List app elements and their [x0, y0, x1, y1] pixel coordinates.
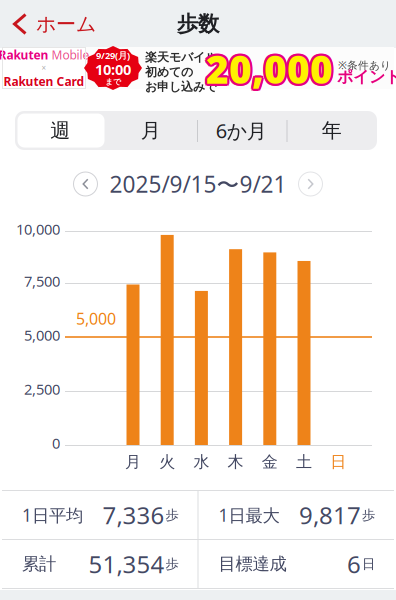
staticText: 金 [262, 452, 278, 472]
button[interactable]: Rakuten [0, 47, 394, 89]
staticText: Mobile [51, 47, 89, 63]
staticText: 水 [193, 452, 209, 472]
staticText: 6 [347, 548, 361, 580]
staticText: 20,000 [204, 43, 331, 94]
staticText: 10,000 [16, 219, 60, 239]
staticText: お申し込みで [145, 79, 217, 94]
staticText: ※条件あり [338, 58, 391, 72]
staticText: × [41, 63, 46, 73]
staticText: 歩 [165, 556, 178, 572]
staticText: Rakuten [0, 47, 48, 63]
staticText: ポイント [337, 67, 396, 87]
staticText: 1日最大 [218, 503, 279, 526]
staticText: Card [56, 73, 84, 89]
button[interactable]: 6か月 [196, 111, 286, 150]
button[interactable]: ホーム [0, 0, 96, 48]
staticText: 歩数 [177, 11, 219, 37]
staticText: 2,500 [24, 379, 60, 399]
staticText: 目標達成 [218, 553, 286, 575]
staticText: 火 [159, 452, 175, 472]
staticText: 20,000 [208, 41, 335, 92]
staticText: 5,000 [76, 308, 116, 329]
button[interactable]: 年 [286, 111, 377, 150]
staticText: 初めての [145, 65, 193, 79]
staticText: 月 [125, 452, 141, 472]
staticText: 年 [322, 118, 342, 143]
staticText: 0 [52, 433, 60, 453]
staticText: 7,336 [102, 499, 164, 531]
button[interactable]: 前の期間 [71, 170, 99, 198]
staticText: 6か月 [216, 117, 267, 144]
staticText: 20,000 [204, 45, 331, 96]
button[interactable]: 週 [15, 111, 105, 150]
staticText: 9,817 [299, 499, 361, 531]
staticText: 土 [296, 452, 312, 472]
staticText: 楽天モバイル [145, 50, 217, 65]
staticText: 累計 [22, 553, 56, 575]
staticText: 10:00 [95, 59, 131, 79]
staticText: 週 [50, 118, 70, 143]
staticText: 木 [228, 452, 244, 472]
staticText: 日 [330, 452, 346, 472]
staticText: 20,000 [206, 43, 333, 94]
staticText: 9/29(月) [96, 49, 130, 62]
staticText: 月 [141, 118, 161, 143]
staticText: 5,000 [24, 325, 60, 345]
staticText: 日 [362, 556, 375, 572]
staticText: 20,000 [208, 43, 335, 94]
button[interactable]: 月 [105, 111, 196, 150]
staticText: 歩 [165, 507, 178, 523]
staticText: まで [105, 77, 121, 87]
staticText: 20,000 [206, 45, 333, 96]
staticText: 7,500 [24, 271, 60, 291]
staticText: 51,354 [88, 548, 164, 580]
staticText: Rakuten [3, 73, 53, 89]
staticText: 20,000 [204, 41, 331, 92]
staticText: 20,000 [208, 45, 335, 96]
button[interactable]: 次の期間 [296, 170, 324, 198]
staticText: 2025/9/15〜9/21 [109, 169, 286, 199]
staticText: ホーム [36, 12, 96, 36]
staticText: 20,000 [206, 41, 333, 92]
staticText: 歩 [362, 507, 375, 523]
staticText: 1日平均 [22, 503, 83, 526]
